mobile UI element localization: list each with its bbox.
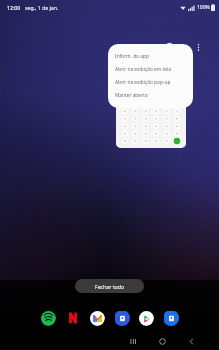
button[interactable]: Gmail	[89, 310, 105, 326]
button[interactable]	[116, 103, 186, 148]
staticText: 12:00	[7, 4, 21, 11]
button[interactable]: Manter aberto	[108, 89, 193, 102]
button[interactable]: Spotify	[40, 310, 56, 326]
staticText: 100%	[197, 4, 210, 11]
staticText: seg., 1 de jan.	[25, 4, 59, 11]
staticText: Abrir na exibição em tela dividida	[115, 66, 186, 73]
button[interactable]: Abrir na exibição pop-up	[108, 76, 193, 89]
button[interactable]: More options	[187, 36, 209, 58]
button[interactable]: Drive	[114, 310, 130, 326]
staticText: Abrir na exibição pop-up	[115, 79, 171, 86]
button[interactable]: Abrir na exibição em tela dividida	[108, 63, 193, 76]
button[interactable]: Files	[163, 310, 179, 326]
staticText: Fechar tudo	[95, 283, 125, 290]
button[interactable]: Inform. do app	[108, 50, 193, 63]
staticText: Inform. do app	[115, 53, 149, 60]
button[interactable]: Netflix	[65, 310, 81, 326]
button[interactable]: Recents	[123, 333, 143, 350]
button[interactable]: Fechar tudo	[75, 279, 144, 293]
staticText: Manter aberto	[115, 92, 148, 99]
button[interactable]: Home	[152, 333, 172, 350]
button[interactable]: Back	[181, 333, 201, 350]
button[interactable]: Search	[159, 36, 181, 58]
button[interactable]: Play Store	[138, 310, 154, 326]
